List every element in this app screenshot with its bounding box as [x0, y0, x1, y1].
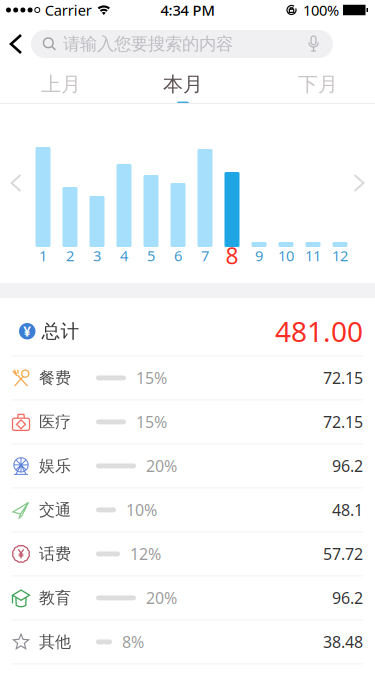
- button[interactable]: 48.1: [0, 488, 375, 531]
- button[interactable]: Voice search: [308, 36, 333, 52]
- staticText: Carrier: [45, 0, 92, 20]
- staticText: 8%: [122, 631, 144, 652]
- staticText: 娱乐: [39, 456, 71, 476]
- staticText: 上月: [41, 72, 81, 97]
- button[interactable]: 57.72: [0, 532, 375, 575]
- button[interactable]: Search: [31, 30, 333, 58]
- staticText: 5: [147, 246, 155, 265]
- staticText: 4: [120, 246, 128, 265]
- button[interactable]: Next: [354, 175, 363, 191]
- staticText: 10: [278, 246, 294, 265]
- staticText: 1: [39, 246, 47, 265]
- button[interactable]: 9: [245, 144, 272, 264]
- staticText: 8: [225, 240, 238, 270]
- staticText: 4:34 PM: [160, 0, 214, 20]
- staticText: 2: [66, 246, 74, 265]
- staticText: 话费: [39, 544, 71, 564]
- staticText: 下月: [298, 72, 338, 97]
- staticText: 481.00: [275, 313, 363, 350]
- staticText: 总计: [41, 320, 79, 343]
- button[interactable]: 本月: [143, 70, 223, 107]
- button[interactable]: 10: [272, 144, 299, 264]
- button[interactable]: 下月: [278, 70, 358, 107]
- staticText: 96.2: [332, 455, 363, 476]
- button[interactable]: Back: [0, 35, 31, 53]
- staticText: 11: [305, 246, 321, 265]
- button[interactable]: 11: [299, 144, 326, 264]
- button[interactable]: 96.2: [0, 444, 375, 487]
- staticText: 医疗: [39, 412, 71, 432]
- button[interactable]: 5: [137, 144, 164, 264]
- staticText: 餐费: [39, 368, 71, 388]
- button[interactable]: 3: [83, 144, 110, 264]
- button[interactable]: 38.48: [0, 620, 375, 663]
- button[interactable]: 2: [56, 144, 83, 264]
- button[interactable]: 96.2: [0, 576, 375, 619]
- button[interactable]: 4: [110, 144, 137, 264]
- staticText: 38.48: [323, 631, 363, 652]
- staticText: 48.1: [332, 499, 363, 520]
- staticText: 20%: [146, 455, 177, 476]
- button[interactable]: 72.15: [0, 400, 375, 443]
- button[interactable]: 上月: [21, 70, 101, 107]
- staticText: 10%: [126, 499, 157, 520]
- staticText: 交通: [39, 500, 71, 520]
- button[interactable]: 72.15: [0, 356, 375, 399]
- staticText: ¥: [23, 322, 31, 340]
- staticText: 12%: [130, 543, 161, 564]
- staticText: 15%: [136, 367, 167, 388]
- button[interactable]: 6: [164, 144, 191, 264]
- staticText: 12: [332, 246, 348, 265]
- staticText: 9: [255, 246, 263, 265]
- button[interactable]: 1: [29, 144, 56, 264]
- staticText: 教育: [39, 588, 71, 608]
- staticText: 3: [93, 246, 101, 265]
- staticText: 其他: [39, 632, 71, 652]
- button[interactable]: 12: [326, 144, 353, 264]
- staticText: 7: [201, 246, 209, 265]
- staticText: 请输入您要搜索的内容: [63, 33, 233, 55]
- staticText: 72.15: [323, 411, 363, 432]
- staticText: 6: [174, 246, 182, 265]
- staticText: 20%: [146, 587, 177, 608]
- staticText: 本月: [163, 72, 203, 97]
- button[interactable]: Previous: [11, 175, 20, 191]
- staticText: 15%: [136, 411, 167, 432]
- button[interactable]: 7: [191, 144, 218, 264]
- staticText: 57.72: [323, 543, 363, 564]
- staticText: 100%: [303, 0, 339, 20]
- staticText: 72.15: [323, 367, 363, 388]
- button[interactable]: 8: [218, 144, 245, 264]
- staticText: 96.2: [332, 587, 363, 608]
